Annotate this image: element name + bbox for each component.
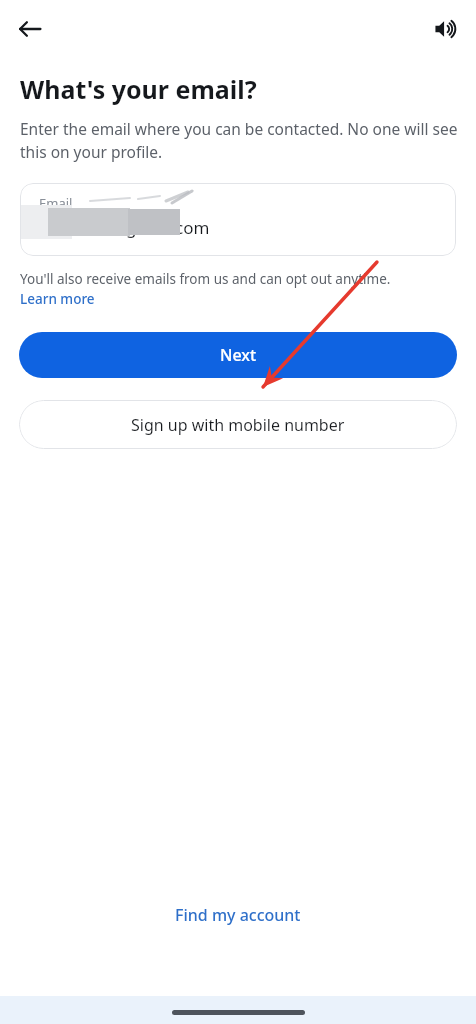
button[interactable]: Back [8, 7, 52, 51]
button[interactable]: Sound [424, 7, 468, 51]
button[interactable]: Email [20, 183, 456, 256]
button[interactable]: Next [19, 332, 457, 378]
staticText: Sign up with mobile number [131, 414, 345, 436]
button[interactable]: Find my account [0, 898, 476, 932]
staticText: Email [39, 194, 73, 212]
button[interactable]: Sign up with mobile number [19, 400, 457, 449]
staticText: 7@gmail.com [39, 216, 210, 239]
staticText: What's your email? [20, 72, 257, 106]
staticText: Enter the email where you can be contact… [20, 118, 458, 163]
staticText: You'll also receive emails from us and c… [20, 270, 391, 288]
staticText: Find my account [175, 904, 301, 926]
staticText: Next [220, 344, 257, 366]
staticText: Learn more [20, 290, 95, 308]
button[interactable]: Learn more [20, 288, 95, 308]
